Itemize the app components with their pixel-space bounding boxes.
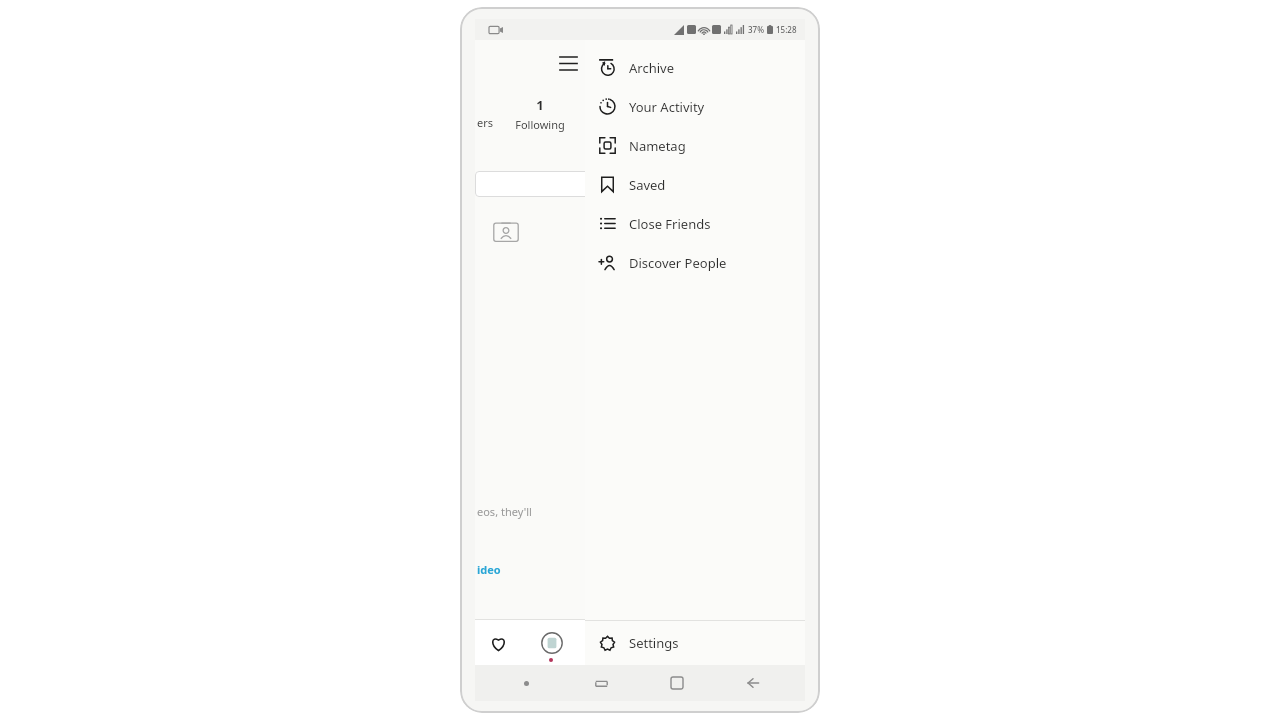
button[interactable]: Menu (553, 48, 583, 78)
button[interactable]: Likes (481, 626, 515, 660)
staticText: Discover People (629, 254, 727, 272)
button[interactable]: Close Friends (585, 204, 805, 243)
staticText: Settings (629, 634, 679, 652)
staticText: Saved (629, 176, 666, 194)
staticText: 1 (536, 96, 544, 114)
staticText: ers (477, 115, 494, 130)
staticText: Following (515, 117, 565, 132)
staticText: eos, they'll (477, 504, 532, 519)
button[interactable] (475, 171, 795, 197)
staticText: 15:28 (776, 24, 797, 35)
button[interactable]: Assistant (489, 665, 564, 701)
button[interactable]: Nametag (585, 126, 805, 165)
button[interactable]: Home (639, 665, 715, 701)
button[interactable]: ideo (477, 562, 501, 577)
button[interactable]: Archive (585, 48, 805, 87)
staticText: Close Friends (629, 215, 711, 233)
staticText: 37% (748, 24, 764, 35)
button[interactable]: Back (715, 665, 791, 701)
staticText: Archive (629, 59, 674, 77)
button[interactable]: Settings (585, 621, 805, 665)
staticText: Nametag (629, 137, 686, 155)
staticText: Your Activity (629, 98, 705, 116)
button[interactable]: Your Activity (585, 87, 805, 126)
button[interactable]: Discover People (585, 243, 805, 282)
button[interactable]: Profile (537, 628, 567, 658)
button[interactable]: Switch (564, 665, 639, 701)
button[interactable]: Saved (585, 165, 805, 204)
